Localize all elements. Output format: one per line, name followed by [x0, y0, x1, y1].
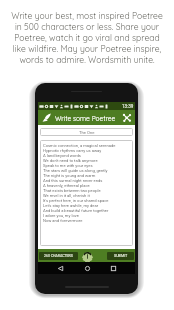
button[interactable]: Back — [55, 263, 65, 273]
button[interactable]: Share — [121, 112, 132, 123]
staticText: 260 CHARACTERS — [44, 254, 73, 258]
button[interactable]: Home — [82, 263, 92, 273]
staticText: 13:39 — [122, 104, 134, 109]
button[interactable]: Compose poem — [41, 112, 52, 123]
staticText: SUBMIT — [114, 254, 128, 258]
button[interactable]: Recents — [108, 263, 118, 273]
button[interactable]: Poetree — [81, 250, 93, 262]
button[interactable]: 260 CHARACTERS — [39, 252, 78, 260]
staticText: Cosmic connection, a magical serenade Hy… — [43, 143, 116, 223]
staticText: Write some Poetree — [55, 114, 116, 122]
staticText: Write your best, most inspired Poetree i… — [9, 10, 165, 65]
button[interactable]: SUBMIT — [107, 252, 134, 260]
staticText: The One — [79, 130, 95, 135]
